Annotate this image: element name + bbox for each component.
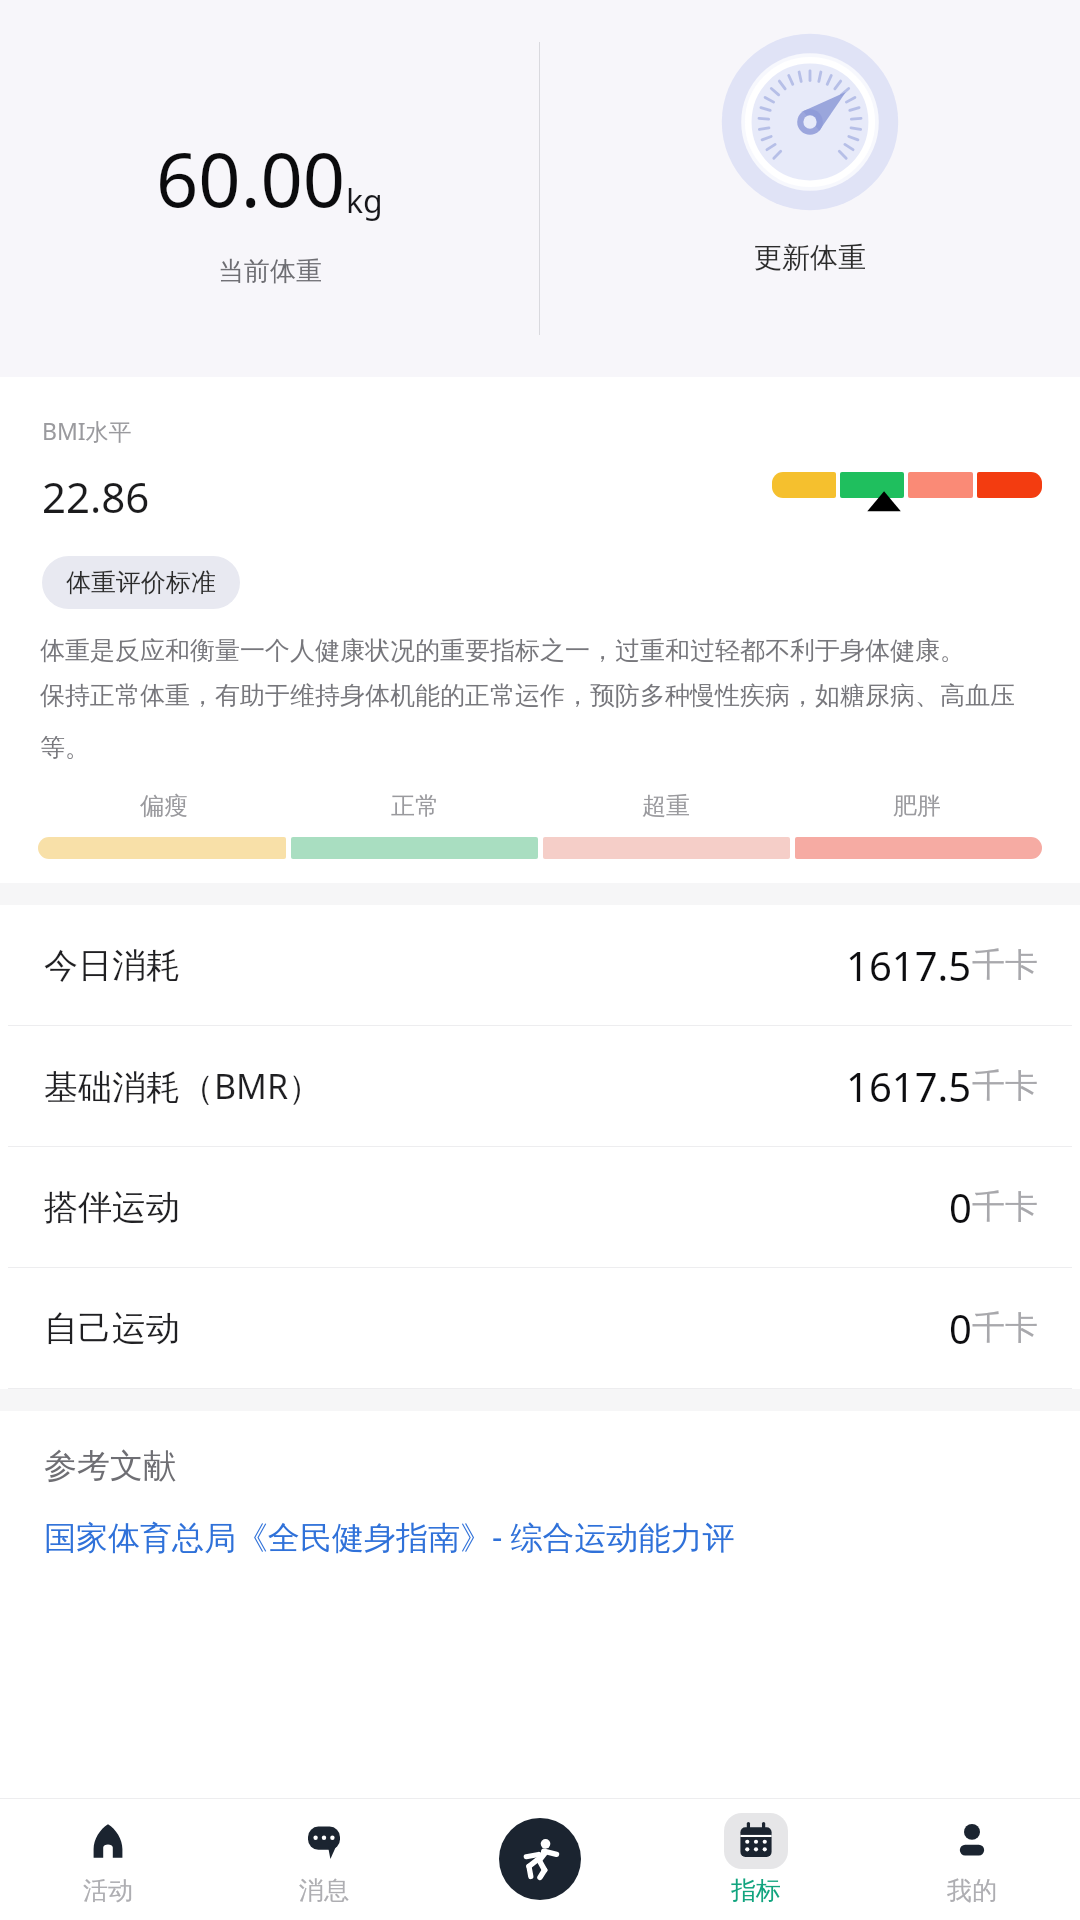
staticText: 千卡 [972, 1186, 1038, 1228]
button[interactable]: 开始运动 [499, 1818, 581, 1900]
staticText: 千卡 [972, 1065, 1038, 1107]
button[interactable]: 国家体育总局《全民健身指南》- 综合运动能力评 [44, 1515, 735, 1559]
staticText: 更新体重 [754, 240, 866, 275]
staticText: 今日消耗 [44, 944, 180, 987]
staticText: 指标 [731, 1875, 781, 1906]
staticText: 0 [949, 1180, 972, 1234]
staticText: 0 [949, 1301, 972, 1355]
staticText: 自己运动 [44, 1307, 180, 1350]
button[interactable]: 我的 [864, 1798, 1080, 1920]
staticText: 体重是反应和衡量一个人健康状况的重要指标之一，过重和过轻都不利于身体健康。 [40, 635, 965, 666]
button[interactable]: 基础消耗（BMR） [0, 1026, 1080, 1146]
button[interactable]: 消息 [216, 1798, 432, 1920]
staticText: 肥胖 [893, 791, 941, 821]
staticText: BMI水平 [42, 415, 132, 446]
staticText: 60.00 [156, 128, 346, 229]
staticText: 超重 [642, 791, 690, 821]
staticText: 我的 [947, 1875, 997, 1906]
staticText: 偏瘦 [140, 791, 188, 821]
button[interactable]: 今日消耗 [0, 905, 1080, 1025]
staticText: 基础消耗（BMR） [44, 1063, 323, 1109]
staticText: 当前体重 [218, 255, 322, 288]
staticText: 千卡 [972, 944, 1038, 986]
staticText: 22.86 [42, 468, 150, 524]
button[interactable]: 搭伴运动 [0, 1147, 1080, 1267]
staticText: 活动 [83, 1875, 133, 1906]
staticText: 1617.5 [846, 938, 972, 992]
staticText: 参考文献 [44, 1445, 176, 1487]
staticText: 1617.5 [846, 1059, 972, 1113]
staticText: 保持正常体重，有助于维持身体机能的正常运作，预防多种慢性疾病，如糖尿病、高血压等… [40, 680, 1040, 763]
button[interactable]: 活动 [0, 1798, 216, 1920]
staticText: 正常 [391, 791, 439, 821]
staticText: 搭伴运动 [44, 1186, 180, 1229]
button[interactable]: 更新体重 [540, 0, 1080, 377]
button[interactable]: 体重评价标准 [42, 556, 240, 609]
staticText: 消息 [299, 1875, 349, 1906]
button[interactable]: 指标 [648, 1798, 864, 1920]
button[interactable]: 自己运动 [0, 1268, 1080, 1388]
staticText: 体重评价标准 [66, 567, 216, 598]
staticText: 千卡 [972, 1307, 1038, 1349]
staticText: kg [346, 179, 383, 223]
